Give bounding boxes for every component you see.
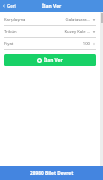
staticText: Tribün bbox=[4, 29, 17, 35]
other: Back bbox=[2, 4, 6, 8]
staticText: İlan Ver bbox=[44, 57, 63, 64]
staticText: Geri bbox=[7, 3, 16, 9]
staticText: 28980 Bilet Devret bbox=[30, 170, 74, 177]
staticText: Karşılaşma bbox=[4, 17, 26, 23]
button[interactable]: Karşılaşma bbox=[0, 14, 100, 26]
staticText: 100 bbox=[82, 41, 90, 47]
button[interactable]: İlan Ver bbox=[4, 54, 96, 66]
button[interactable]: Back bbox=[2, 0, 16, 12]
staticText: Galatasara... bbox=[65, 17, 90, 23]
staticText: Kuzey Kale ... bbox=[64, 29, 90, 35]
button[interactable]: Tribün bbox=[0, 26, 100, 38]
staticText: Fiyat bbox=[4, 41, 14, 47]
button[interactable]: Fiyat bbox=[0, 38, 100, 50]
staticText: İlan Ver bbox=[42, 3, 62, 10]
button[interactable]: 28980 Bilet Devret bbox=[0, 166, 103, 180]
